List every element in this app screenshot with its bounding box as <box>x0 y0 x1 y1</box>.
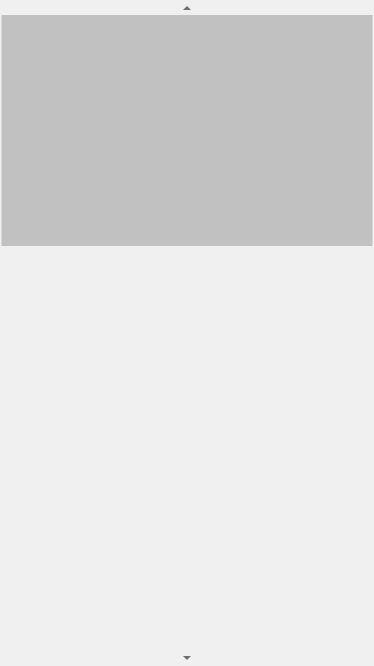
button[interactable]: Back <box>0 0 356 46</box>
other: Back <box>0 0 34 46</box>
staticText: 0 <box>85 241 92 256</box>
staticText: 18机电线上直播专用 <box>34 12 190 35</box>
staticText: 97 <box>258 241 271 256</box>
